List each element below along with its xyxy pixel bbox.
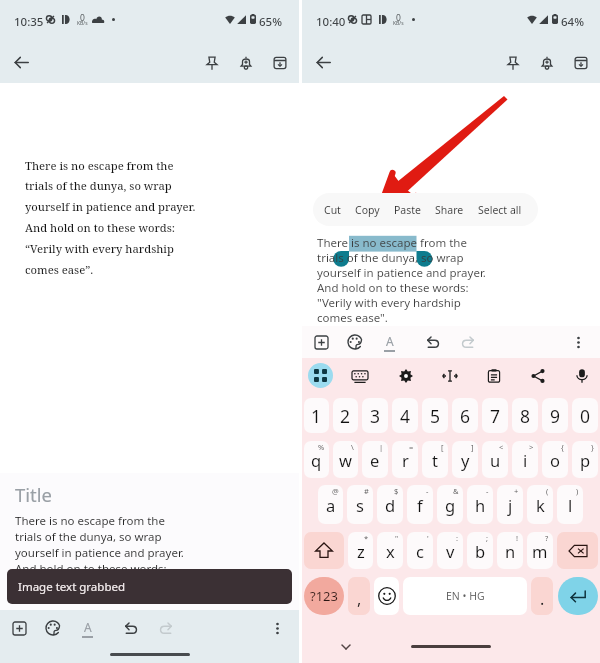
button[interactable]: v <box>437 532 463 569</box>
button[interactable]: b <box>467 532 493 569</box>
button[interactable]: w <box>333 441 358 478</box>
staticText: d <box>385 494 396 516</box>
button[interactable]: Share <box>428 193 471 226</box>
button[interactable]: Redo <box>152 614 180 642</box>
staticText: There is no escape from the trials of th… <box>25 158 196 277</box>
button[interactable]: . <box>531 577 553 615</box>
button[interactable]: Share <box>525 363 551 389</box>
button[interactable]: ?123 <box>304 577 344 615</box>
button[interactable]: p <box>572 441 598 478</box>
button[interactable]: Undo <box>117 614 145 642</box>
button[interactable]: Enter <box>558 577 598 615</box>
staticText: 3 <box>370 404 381 428</box>
button[interactable]: Back <box>309 48 338 77</box>
button[interactable]: t <box>422 441 448 478</box>
button[interactable]: Format <box>375 328 403 356</box>
button[interactable]: 1 <box>304 398 329 433</box>
button[interactable]: Back <box>7 48 36 77</box>
staticText: Share <box>435 203 464 217</box>
button[interactable]: a <box>318 485 343 524</box>
staticText: Paste <box>394 203 421 217</box>
button[interactable]: Shift <box>304 532 344 569</box>
button[interactable]: h <box>467 485 493 524</box>
staticText: 0 <box>396 12 401 24</box>
staticText: q <box>311 449 322 471</box>
staticText: ? <box>545 533 549 543</box>
staticText: Cut <box>324 203 341 217</box>
button[interactable]: n <box>497 532 523 569</box>
button[interactable]: Keyboard layout <box>347 363 373 389</box>
button[interactable]: l <box>557 485 583 524</box>
staticText: 0 <box>580 404 591 428</box>
staticText: s <box>356 494 364 516</box>
staticText: , <box>357 588 362 610</box>
button[interactable]: 8 <box>512 398 538 433</box>
button[interactable]: EN • HG <box>403 577 527 615</box>
button[interactable]: Voice input <box>569 363 595 389</box>
button[interactable]: Text editing <box>437 363 463 389</box>
button[interactable]: , <box>348 577 370 615</box>
button[interactable]: z <box>348 532 373 569</box>
button[interactable]: 5 <box>422 398 448 433</box>
staticText: u <box>490 449 501 471</box>
button[interactable]: Add <box>5 614 33 642</box>
button[interactable]: 7 <box>482 398 508 433</box>
button[interactable]: k <box>527 485 553 524</box>
button[interactable]: 9 <box>542 398 568 433</box>
staticText: b <box>475 540 486 562</box>
button[interactable]: j <box>497 485 523 524</box>
button[interactable]: Archive <box>566 48 595 77</box>
button[interactable]: e <box>362 441 388 478</box>
button[interactable]: Reminder <box>231 48 260 77</box>
staticText: g <box>445 494 456 516</box>
button[interactable]: Backspace <box>557 532 598 569</box>
button[interactable]: o <box>542 441 568 478</box>
button[interactable]: g <box>437 485 463 524</box>
button[interactable]: Clipboard <box>481 363 507 389</box>
staticText: [ <box>441 442 444 452</box>
button[interactable]: f <box>407 485 433 524</box>
button[interactable]: Toolbox <box>308 363 333 388</box>
button[interactable]: u <box>482 441 508 478</box>
button[interactable]: Settings <box>393 363 419 389</box>
button[interactable]: c <box>407 532 433 569</box>
button[interactable]: m <box>527 532 553 569</box>
button[interactable]: d <box>377 485 403 524</box>
button[interactable]: More options <box>263 614 291 642</box>
button[interactable]: Archive <box>265 48 294 77</box>
button[interactable]: i <box>512 441 538 478</box>
staticText: & <box>453 486 459 496</box>
button[interactable]: Hide keyboard <box>336 637 356 657</box>
button[interactable]: Select all <box>471 193 529 226</box>
button[interactable]: Reminder <box>532 48 561 77</box>
button[interactable]: 6 <box>452 398 478 433</box>
button[interactable]: Add <box>307 328 335 356</box>
button[interactable]: Pin <box>197 48 226 77</box>
button[interactable]: 0 <box>572 398 598 433</box>
button[interactable]: Format <box>73 614 101 642</box>
button[interactable]: r <box>392 441 418 478</box>
staticText: @ <box>332 486 339 496</box>
button[interactable]: Cut <box>317 193 348 226</box>
button[interactable]: s <box>347 485 373 524</box>
button[interactable]: Redo <box>454 328 482 356</box>
button[interactable]: y <box>452 441 478 478</box>
button[interactable]: q <box>304 441 329 478</box>
button[interactable]: 3 <box>362 398 388 433</box>
button[interactable]: Colour <box>341 328 369 356</box>
button[interactable]: Pin <box>498 48 527 77</box>
button[interactable]: Colour <box>39 614 67 642</box>
button[interactable]: Paste <box>387 193 428 226</box>
button[interactable]: Copy <box>348 193 387 226</box>
button[interactable]: Undo <box>419 328 447 356</box>
button[interactable]: 4 <box>392 398 418 433</box>
staticText: 9 <box>550 404 561 428</box>
button[interactable]: Emoji <box>374 577 399 615</box>
staticText: ; <box>486 533 489 543</box>
staticText: | <box>379 442 384 452</box>
button[interactable]: More options <box>564 328 592 356</box>
button[interactable]: x <box>377 532 403 569</box>
button[interactable]: Image text grabbed <box>7 569 292 604</box>
button[interactable]: 2 <box>333 398 358 433</box>
staticText: 5 <box>430 404 441 428</box>
